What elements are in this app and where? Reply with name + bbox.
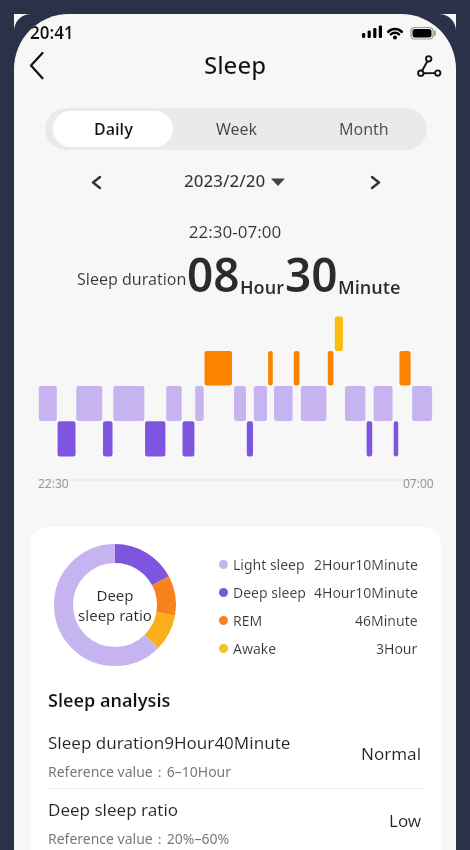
button[interactable]: Month xyxy=(300,108,427,150)
staticText: Month xyxy=(339,118,389,140)
staticText: Hour xyxy=(240,275,285,300)
staticText: 46Minute xyxy=(355,611,418,630)
staticText: REM xyxy=(233,611,263,630)
button[interactable]: Sleep duration9Hour40Minute xyxy=(48,731,422,781)
staticText: 4Hour10Minute xyxy=(314,583,418,602)
staticText: 2023/2/20 xyxy=(184,169,266,192)
staticText: Light sleep xyxy=(233,555,305,574)
staticText: Normal xyxy=(361,742,422,765)
staticText: Reference value：20%–60% xyxy=(48,829,230,848)
staticText: Sleep analysis xyxy=(48,688,171,713)
staticText: Deep sleep ratio xyxy=(78,585,152,625)
button[interactable] xyxy=(82,168,110,196)
button[interactable]: Week xyxy=(173,108,300,150)
staticText: 20:41 xyxy=(30,21,74,44)
staticText: 3Hour xyxy=(376,639,418,658)
staticText: 2Hour10Minute xyxy=(314,555,418,574)
staticText: Low xyxy=(389,809,422,832)
staticText: Sleep xyxy=(14,48,456,81)
button[interactable]: 2023/2/20 xyxy=(184,169,286,192)
button[interactable] xyxy=(412,52,446,86)
staticText: Sleep duration9Hour40Minute xyxy=(48,731,291,754)
staticText: Week xyxy=(216,118,258,140)
staticText: 30 xyxy=(285,243,338,306)
staticText: Daily xyxy=(94,118,133,140)
button[interactable] xyxy=(22,53,52,83)
staticText: 22:30 xyxy=(38,475,69,491)
staticText: 07:00 xyxy=(403,475,434,491)
button[interactable]: Deep sleep ratio xyxy=(48,798,422,848)
staticText: 22:30-07:00 xyxy=(14,220,456,243)
button[interactable]: Daily xyxy=(53,111,173,147)
staticText: Deep sleep xyxy=(233,583,306,602)
staticText: Sleep duration xyxy=(77,268,187,290)
staticText: Minute xyxy=(338,275,401,300)
staticText: Reference value：6–10Hour xyxy=(48,762,232,781)
staticText: 08 xyxy=(187,243,240,306)
button[interactable] xyxy=(362,168,390,196)
staticText: Awake xyxy=(233,639,277,658)
staticText: Deep sleep ratio xyxy=(48,798,179,821)
